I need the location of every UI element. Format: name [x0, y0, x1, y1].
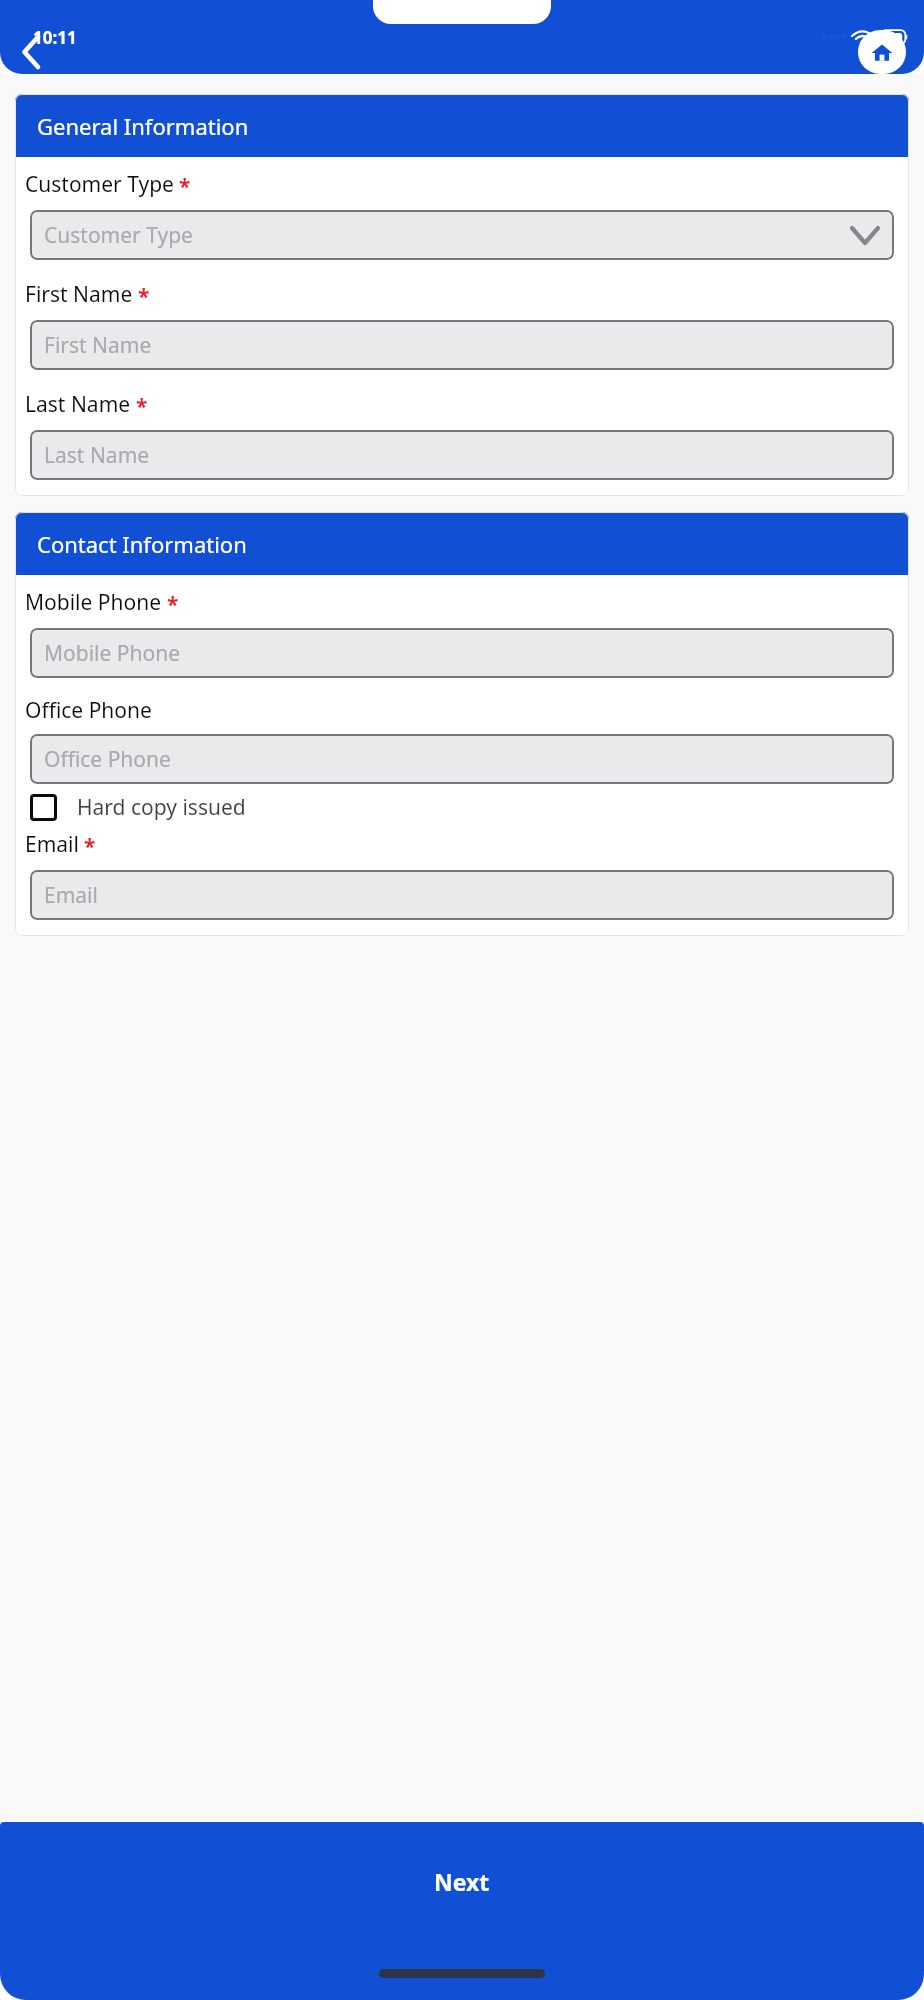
- button[interactable]: Office Phone: [30, 734, 894, 784]
- staticText: Hard copy issued: [77, 793, 246, 822]
- staticText: Mobile Phone: [44, 639, 181, 668]
- staticText: Customer Type: [25, 170, 174, 199]
- staticText: First Name: [25, 280, 133, 309]
- button[interactable]: Back: [10, 30, 54, 74]
- staticText: General Information: [37, 111, 249, 141]
- staticText: *: [167, 590, 179, 619]
- staticText: Email: [25, 830, 79, 859]
- staticText: Last Name: [44, 441, 150, 470]
- staticText: Mobile Phone: [25, 588, 162, 617]
- staticText: Email: [44, 881, 98, 910]
- button[interactable]: Last Name: [30, 430, 894, 480]
- button[interactable]: Hard copy issued: [30, 793, 246, 822]
- staticText: *: [136, 392, 148, 421]
- staticText: Office Phone: [44, 745, 171, 774]
- button[interactable]: Mobile Phone: [30, 628, 894, 678]
- button[interactable]: Next: [0, 1822, 924, 1940]
- staticText: *: [84, 832, 96, 861]
- staticText: *: [179, 172, 191, 201]
- button[interactable]: Home: [858, 30, 906, 74]
- staticText: *: [138, 282, 150, 311]
- button[interactable]: Email: [30, 870, 894, 920]
- staticText: Customer Type: [44, 221, 193, 250]
- staticText: 10:11: [33, 26, 77, 49]
- staticText: Last Name: [25, 390, 131, 419]
- button[interactable]: First Name: [30, 320, 894, 370]
- staticText: First Name: [44, 331, 152, 360]
- staticText: Office Phone: [25, 696, 152, 725]
- staticText: Contact Information: [37, 529, 247, 559]
- staticText: Next: [434, 1866, 490, 1897]
- button[interactable]: Customer Type: [30, 210, 894, 260]
